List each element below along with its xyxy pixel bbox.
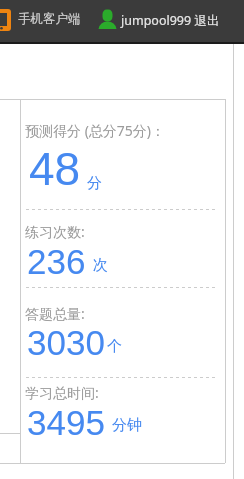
staticText: 3495	[27, 403, 105, 442]
staticText: 236	[27, 242, 86, 281]
staticText: 学习总时间:	[25, 383, 99, 402]
staticText: 手机客户端	[18, 11, 81, 27]
staticText: 3030	[27, 323, 105, 362]
staticText: 个	[107, 337, 122, 356]
staticText: 次	[93, 256, 108, 275]
staticText: 答题总量:	[25, 304, 85, 323]
staticText: 分钟	[112, 416, 142, 435]
staticText: 预测得分 (总分75分)：	[25, 121, 166, 140]
button[interactable]: jumpool999 退出	[0, 0, 99, 17]
button[interactable]: 手机客户端	[0, 0, 244, 42]
staticText: 练习次数:	[25, 222, 85, 241]
staticText: 分	[87, 174, 102, 193]
staticText: 48	[29, 143, 81, 194]
